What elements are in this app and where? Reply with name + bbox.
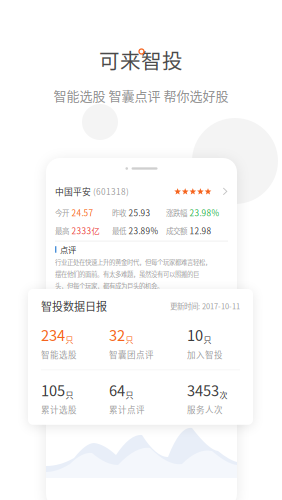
staticText: 3453 bbox=[187, 379, 219, 400]
staticText: 摆在他们的面前。有太多难题，虽然没有可以照搬的巨 bbox=[55, 269, 199, 278]
staticText: 只 bbox=[125, 334, 133, 345]
staticText: 智投数据日报 bbox=[41, 298, 107, 314]
staticText: 服务人次 bbox=[187, 403, 223, 416]
staticText: 25.93 bbox=[128, 207, 150, 219]
staticText: 只 bbox=[65, 334, 73, 345]
staticText: 64 bbox=[109, 379, 125, 400]
staticText: 更新时间: 2017-10-11 bbox=[170, 301, 240, 311]
staticText: 只 bbox=[125, 389, 133, 400]
staticText: 234 bbox=[41, 324, 65, 345]
staticText: 加入智投 bbox=[187, 348, 223, 361]
staticText: 今开 bbox=[55, 207, 69, 218]
staticText: 智囊团点评 bbox=[109, 348, 154, 361]
staticText: 智能选股 智囊点评 帮你选好股 bbox=[53, 86, 228, 105]
staticText: 成交额 bbox=[166, 225, 187, 236]
staticText: 2333亿 bbox=[71, 225, 99, 237]
staticText: 12.98 bbox=[189, 225, 211, 237]
staticText: 行业正处在快速上升的黄金时代，但每个玩家都难言轻松， bbox=[55, 257, 211, 267]
staticText: 累计点评 bbox=[109, 403, 145, 416]
staticText: 10 bbox=[187, 324, 203, 345]
staticText: 累计选股 bbox=[41, 403, 77, 416]
staticText: 24.57 bbox=[71, 207, 93, 219]
staticText: 最低 bbox=[112, 225, 126, 236]
staticText: 昨收 bbox=[112, 207, 126, 218]
staticText: 105 bbox=[41, 379, 65, 400]
staticText: 23.89% bbox=[128, 225, 158, 237]
staticText: 最高 bbox=[55, 225, 69, 236]
button[interactable]: 中国平安 bbox=[46, 179, 237, 296]
staticText: 可来智投 bbox=[99, 45, 183, 75]
staticText: 智能选股 bbox=[41, 348, 77, 361]
staticText: 点评 bbox=[60, 243, 76, 255]
staticText: 头，但每个玩家，都有成为巨头的机会。 bbox=[55, 281, 163, 290]
staticText: 中国平安 bbox=[55, 185, 91, 198]
staticText: 涨跌幅 bbox=[166, 207, 187, 218]
staticText: (601318) bbox=[91, 185, 129, 197]
staticText: 23.98% bbox=[189, 207, 219, 219]
staticText: 32 bbox=[109, 324, 125, 345]
staticText: 只 bbox=[65, 389, 73, 400]
staticText: 只 bbox=[203, 334, 211, 345]
staticText: 次 bbox=[219, 389, 227, 400]
